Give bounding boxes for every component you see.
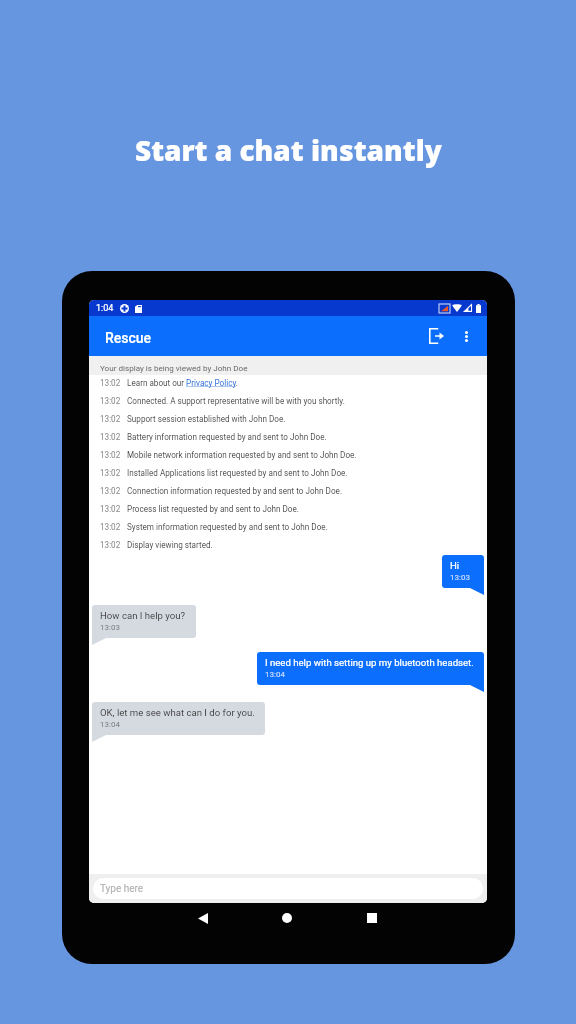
staticText: 13:03 [450, 573, 470, 582]
staticText: Display viewing started. [127, 540, 213, 550]
staticText: System information requested by and sent… [127, 522, 328, 532]
staticText: 1:04 [96, 303, 114, 314]
staticText: Start a chat instantly [135, 131, 442, 169]
staticText: 13:02 [100, 540, 121, 550]
staticText: 13:02 [100, 378, 121, 388]
staticText: Rescue [105, 330, 152, 346]
staticText: 13:04 [265, 670, 285, 679]
button[interactable]: 13:02 [100, 446, 487, 464]
staticText: Type here [100, 883, 144, 895]
staticText: 13:02 [100, 486, 121, 496]
staticText: 13:04 [100, 720, 120, 729]
staticText: 13:02 [100, 414, 121, 424]
button[interactable]: How can I help you? [92, 605, 196, 638]
button[interactable]: 13:02 [100, 374, 487, 392]
staticText: Learn about our Privacy Policy. [127, 378, 238, 388]
staticText: How can I help you? [100, 610, 186, 621]
button[interactable]: OK, let me see what can I do for you. [92, 702, 265, 735]
button[interactable]: 13:02 [100, 464, 487, 482]
button[interactable]: 13:02 [100, 518, 487, 536]
staticText: 13:02 [100, 522, 121, 532]
staticText: Your display is being viewed by John Doe [100, 363, 248, 372]
button[interactable]: Hi [442, 555, 484, 588]
staticText: Hi [450, 560, 460, 571]
staticText: 13:02 [100, 396, 121, 406]
button[interactable]: More options [451, 321, 481, 351]
button[interactable]: 13:02 [100, 482, 487, 500]
button[interactable]: 13:02 [100, 536, 487, 554]
button[interactable]: Log out [421, 321, 451, 351]
staticText: 13:02 [100, 450, 121, 460]
button[interactable]: 13:02 [100, 500, 487, 518]
button[interactable]: Home [265, 896, 309, 940]
staticText: Process list requested by and sent to Jo… [127, 504, 299, 514]
button[interactable]: 13:02 [100, 410, 487, 428]
button[interactable]: Back [181, 896, 225, 940]
button[interactable]: 13:02 [100, 428, 487, 446]
staticText: Battery information requested by and sen… [127, 432, 327, 442]
staticText: 13:02 [100, 432, 121, 442]
button[interactable]: Recent apps [350, 896, 394, 940]
staticText: OK, let me see what can I do for you. [100, 707, 255, 718]
staticText: 13:03 [100, 623, 120, 632]
button[interactable]: I need help with setting up my bluetooth… [257, 652, 484, 685]
staticText: I need help with setting up my bluetooth… [265, 657, 474, 668]
button[interactable]: Type here [93, 878, 483, 899]
staticText: Installed Applications list requested by… [127, 468, 348, 478]
button[interactable]: 13:02 [100, 392, 487, 410]
staticText: Connection information requested by and … [127, 486, 343, 496]
staticText: 13:02 [100, 468, 121, 478]
staticText: Mobile network information requested by … [127, 450, 357, 460]
staticText: Connected. A support representative will… [127, 396, 345, 406]
staticText: 13:02 [100, 504, 121, 514]
staticText: Support session established with John Do… [127, 414, 286, 424]
